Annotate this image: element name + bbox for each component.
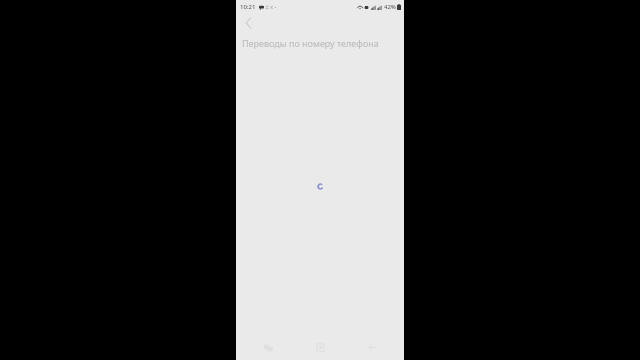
staticText: 10:21 [240, 3, 256, 11]
staticText: 42% [384, 3, 396, 11]
staticText: Переводы по номеру телефона [242, 37, 379, 49]
button[interactable]: Back [239, 14, 257, 32]
